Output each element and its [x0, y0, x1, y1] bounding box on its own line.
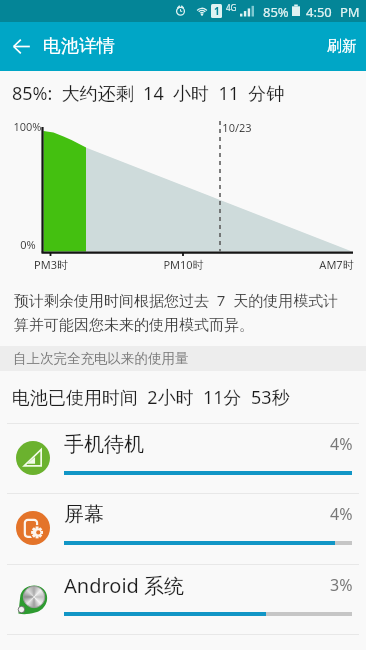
button[interactable]: Android 系统 [0, 564, 366, 634]
staticText: PM3时 [34, 257, 68, 272]
staticText: 85% [263, 3, 289, 21]
staticText: AM7时 [319, 257, 354, 272]
staticText: 100% [13, 119, 42, 134]
staticText: 4% [330, 503, 353, 525]
staticText: 1 [214, 4, 220, 18]
staticText: 刷新 [327, 37, 357, 56]
staticText: 电池详情 [43, 35, 115, 58]
staticText: 3% [330, 574, 353, 596]
staticText: 电池已使用时间 2小时 11分 53秒 [12, 385, 290, 410]
staticText: 屏幕 [64, 502, 104, 527]
staticText: 自上次完全充电以来的使用量 [13, 350, 189, 367]
staticText: 10/23 [222, 120, 252, 135]
staticText: 4G [226, 2, 237, 13]
button[interactable]: Back [0, 22, 43, 71]
staticText: 85%: 大约还剩 14 小时 11 分钟 [12, 81, 285, 106]
button[interactable]: 屏幕 [0, 493, 366, 563]
staticText: 手机待机 [64, 432, 144, 457]
staticText: 0% [20, 237, 36, 252]
staticText: Android 系统 [64, 572, 185, 598]
staticText: PM10时 [163, 257, 204, 272]
button[interactable]: 刷新 [311, 22, 366, 71]
staticText: 4% [330, 433, 353, 455]
staticText: 4:50 [306, 3, 332, 21]
button[interactable]: 手机待机 [0, 423, 366, 493]
staticText: 预计剩余使用时间根据您过去 7 天的使用模式计算并可能因您未来的使用模式而异。 [14, 290, 344, 335]
staticText: PM [340, 3, 360, 21]
